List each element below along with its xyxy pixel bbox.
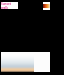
button[interactable]: Open item <box>43 2 50 10</box>
staticText: Sunset walk <box>1 2 18 9</box>
button[interactable] <box>1 52 50 72</box>
button[interactable]: Sunset walk <box>1 2 18 9</box>
